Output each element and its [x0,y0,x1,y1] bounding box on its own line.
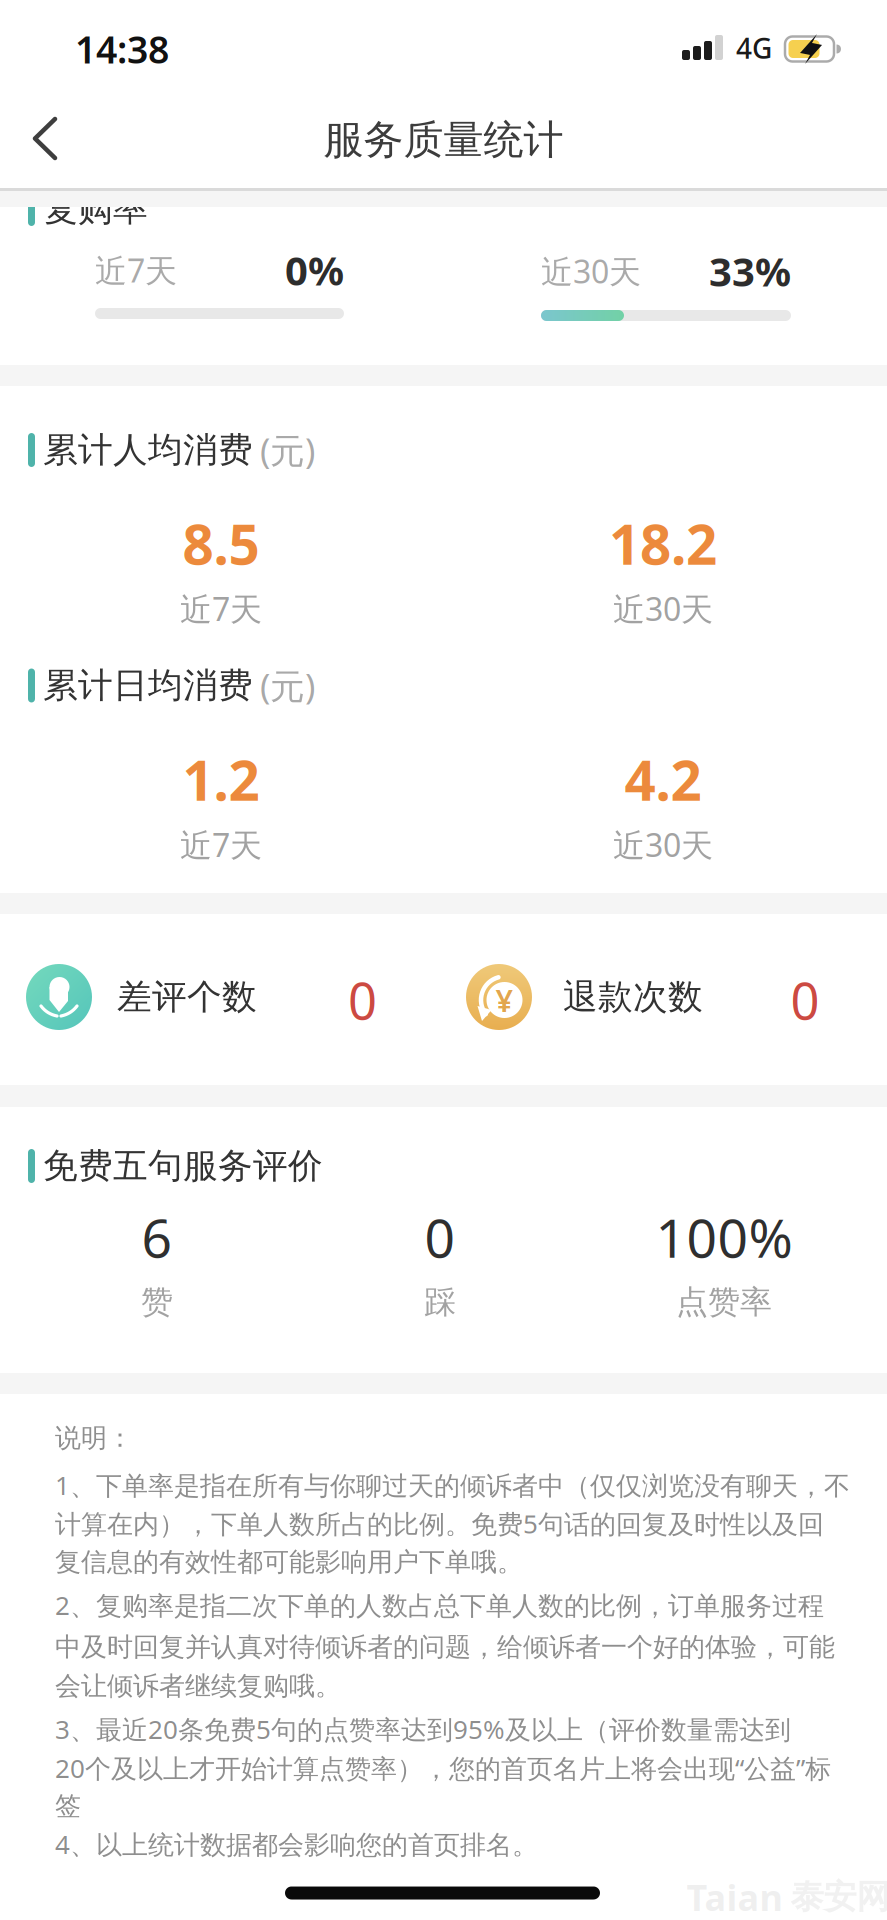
staticText: 2、复购率是指二次下单的人数占总下单人数的比例，订单服务过程 [55,1587,824,1623]
staticText: 签 [55,1790,81,1822]
staticText: 4.2 [624,743,701,816]
staticText: 说明： [55,1422,133,1454]
staticText: 中及时回复并认真对待倾诉者的问题，给倾诉者一个好的体验，可能 [55,1631,835,1663]
staticText: 踩 [424,1282,456,1322]
staticText: 会让倾诉者继续复购哦。 [55,1670,341,1702]
staticText: ¥ [495,980,513,1020]
staticText: 6 [141,1202,172,1272]
staticText: 0% [285,243,344,296]
staticText: 近30天 [613,587,713,630]
staticText: (元) [260,427,315,473]
staticText: 免费五句服务评价 [43,1145,323,1187]
staticText: 近30天 [541,250,641,292]
staticText: (元) [260,662,315,708]
staticText: 近7天 [180,587,262,630]
staticText: 泰安网 [790,1876,887,1917]
staticText: 1.2 [182,743,259,816]
button[interactable]: Back [0,93,90,183]
staticText: 近7天 [180,823,262,866]
staticText: 复购率 [43,188,148,230]
staticText: 服务质量统计 [323,115,563,164]
staticText: 8.5 [182,507,259,580]
staticText: 100% [655,1202,792,1272]
staticText: 14:38 [75,24,169,74]
staticText: Taian [686,1873,782,1920]
staticText: 0 [348,966,377,1034]
staticText: 3、最近20条免费5句的点赞率达到95%及以上（评价数量需达到 [55,1711,791,1747]
staticText: 0 [424,1202,455,1272]
staticText: 点赞率 [676,1282,772,1322]
staticText: 20个及以上才开始计算点赞率），您的首页名片上将会出现“公益”标 [55,1750,831,1786]
staticText: 4G [736,29,772,67]
staticText: 近7天 [95,249,177,291]
staticText: 累计日均消费 [43,664,253,707]
staticText: 0 [790,966,819,1034]
staticText: 赞 [141,1282,173,1322]
staticText: 1、下单率是指在所有与你聊过天的倾诉者中（仅仅浏览没有聊天，不 [55,1467,850,1503]
staticText: 累计人均消费 [43,429,253,471]
staticText: 18.2 [609,507,717,580]
staticText: 近30天 [613,823,713,866]
staticText: 33% [709,244,791,297]
staticText: 差评个数 [117,976,257,1018]
staticText: 退款次数 [563,976,703,1018]
staticText: 4、以上统计数据都会影响您的首页排名。 [55,1826,538,1862]
staticText: 计算在内），下单人数所占的比例。免费5句话的回复及时性以及回 [55,1506,824,1541]
staticText: 复信息的有效性都可能影响用户下单哦。 [55,1546,523,1578]
